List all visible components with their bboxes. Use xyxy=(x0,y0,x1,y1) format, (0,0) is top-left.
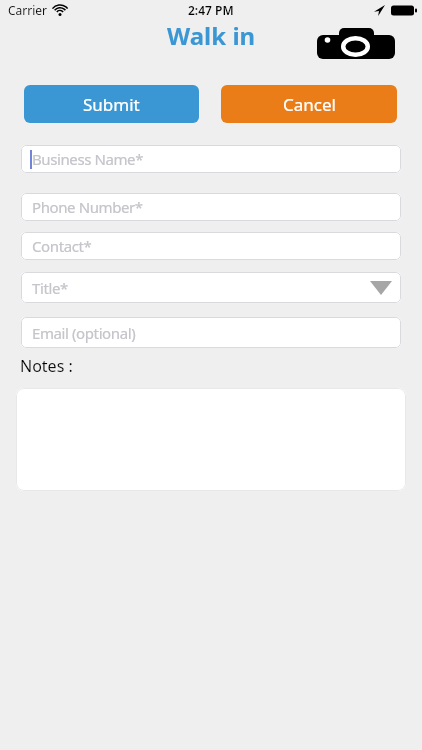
button[interactable]: Contact* xyxy=(21,232,401,260)
staticText: Notes : xyxy=(20,355,73,377)
button[interactable]: Title* xyxy=(21,272,401,303)
button[interactable]: Business Name* xyxy=(21,145,401,173)
staticText: Business Name* xyxy=(32,149,144,169)
button[interactable]: Email (optional) xyxy=(21,317,401,348)
staticText: Walk in xyxy=(167,19,256,52)
staticText: Email (optional) xyxy=(32,323,136,343)
staticText: 2:47 PM xyxy=(188,2,234,18)
staticText: Submit xyxy=(83,93,140,116)
staticText: Contact* xyxy=(32,236,92,256)
button[interactable]: Phone Number* xyxy=(21,193,401,221)
staticText: Cancel xyxy=(283,93,336,116)
button[interactable]: Submit xyxy=(24,85,199,123)
button[interactable] xyxy=(16,388,406,491)
staticText: Title* xyxy=(32,278,68,298)
button[interactable]: Cancel xyxy=(221,85,397,123)
staticText: Phone Number* xyxy=(32,197,143,217)
staticText: Carrier xyxy=(8,2,48,18)
